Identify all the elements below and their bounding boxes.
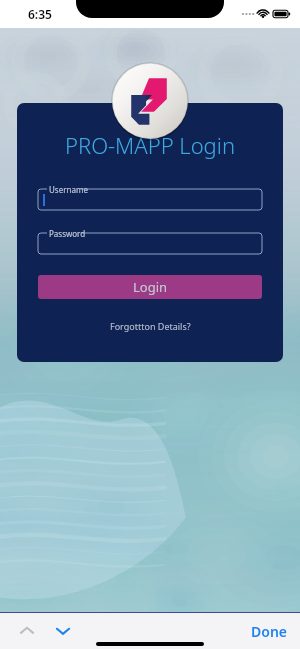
staticText: Username (49, 184, 88, 195)
staticText: Done (251, 622, 288, 641)
button[interactable]: Previous field (12, 616, 42, 646)
staticText: PRO-MAPP Login (65, 130, 235, 160)
button[interactable]: Username (38, 185, 262, 210)
button[interactable]: Password (38, 229, 262, 254)
staticText: Login (133, 278, 168, 296)
staticText: 6:35 (28, 6, 52, 22)
button[interactable]: Forgottton Details? (104, 317, 197, 335)
button[interactable]: Done (239, 616, 300, 647)
staticText: Forgottton Details? (110, 320, 191, 332)
staticText: Password (49, 228, 86, 239)
button[interactable]: Next field (48, 616, 78, 646)
button[interactable]: Login (38, 275, 262, 299)
